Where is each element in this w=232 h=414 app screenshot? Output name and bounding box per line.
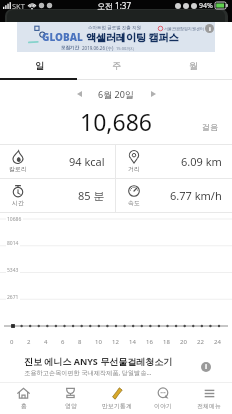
staticText: 만보기통계: [102, 402, 132, 410]
staticText: 4: [44, 338, 48, 346]
staticText: 5343: [7, 267, 19, 274]
staticText: 6: [61, 338, 65, 346]
button[interactable]: 속도: [116, 179, 232, 212]
staticText: 조용하고손목이편한 국내제작제품, 당일발송…: [24, 368, 152, 376]
staticText: i: [205, 362, 208, 372]
button[interactable]: 다음 날짜: [146, 87, 160, 101]
staticText: 10: [95, 338, 102, 346]
staticText: 14: [129, 338, 136, 346]
staticText: 94%: [199, 1, 213, 11]
staticText: 8: [78, 338, 82, 346]
staticText: 10,686: [80, 106, 152, 137]
staticText: 94 kcal: [69, 154, 105, 169]
button[interactable]: 월: [155, 52, 232, 78]
button[interactable]: 이전 날짜: [72, 87, 86, 101]
staticText: 이야기: [154, 402, 172, 410]
button[interactable]: 진보 에니스 ANYS 무선물걸레청소기: [17, 352, 215, 382]
staticText: 85 분: [78, 188, 105, 203]
staticText: 일: [35, 60, 44, 71]
staticText: 15:00까지: [116, 46, 135, 51]
staticText: 칼로리: [9, 165, 27, 173]
button[interactable]: 거리: [116, 145, 232, 178]
button[interactable]: 시간: [0, 179, 115, 212]
staticText: 거리: [128, 165, 140, 173]
staticText: 10686: [7, 216, 22, 223]
staticText: 6.77 km/h: [170, 188, 222, 203]
staticText: SKT: [12, 1, 25, 11]
staticText: 진보 에니스 ANYS 무선물걸레청소기: [24, 355, 173, 367]
staticText: 0: [10, 338, 14, 346]
staticText: 서울관광창업지원센터: [164, 26, 204, 31]
staticText: 18: [163, 338, 170, 346]
button[interactable]: 이야기: [140, 383, 186, 414]
staticText: 월: [189, 60, 198, 71]
staticText: 6월 20일: [98, 88, 134, 100]
staticText: 전체메뉴: [197, 402, 221, 410]
staticText: 오전 1:37: [97, 0, 131, 11]
staticText: 2019.06.26 (수): [82, 45, 114, 51]
button[interactable]: 홈: [0, 383, 47, 414]
staticText: 액셀러레이팅 캠퍼스: [86, 30, 179, 44]
staticText: i: [209, 25, 211, 33]
button[interactable]: 칼로리: [0, 145, 115, 178]
button[interactable]: 전체메뉴: [186, 383, 232, 414]
staticText: 영양: [65, 402, 77, 410]
staticText: 24: [214, 338, 221, 346]
staticText: 6.09 km: [181, 154, 222, 169]
staticText: 속도: [128, 199, 140, 207]
staticText: 22: [197, 338, 204, 346]
staticText: 12: [112, 338, 119, 346]
button[interactable]: 일: [0, 52, 78, 78]
staticText: 시간: [12, 199, 24, 207]
staticText: 8014: [7, 240, 19, 247]
staticText: 2671: [7, 294, 19, 301]
staticText: 16: [146, 338, 153, 346]
staticText: 2: [27, 338, 31, 346]
staticText: 홈: [21, 402, 27, 410]
staticText: 걸음: [202, 122, 218, 132]
button[interactable]: 주: [78, 52, 155, 78]
staticText: 모집기간: [61, 45, 79, 51]
staticText: 스마트업 글로벌 진출 지원: [88, 24, 142, 30]
staticText: GLOBAL: [42, 30, 83, 44]
staticText: 20: [180, 338, 187, 346]
button[interactable]: 만보기통계: [94, 383, 140, 414]
button[interactable]: 광고 배너: [17, 22, 215, 52]
staticText: 주: [112, 60, 121, 71]
button[interactable]: 영양: [47, 383, 94, 414]
